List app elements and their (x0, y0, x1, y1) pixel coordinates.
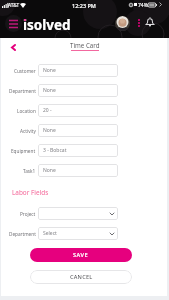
staticText: Labor Fields (12, 188, 49, 197)
staticText: CANCEL (70, 273, 93, 281)
button[interactable]: Back (7, 41, 20, 54)
staticText: AT&T (8, 2, 20, 9)
staticText: Task1 (23, 168, 36, 174)
button[interactable]: None (38, 64, 118, 77)
button[interactable]: 20 - (38, 104, 118, 117)
staticText: 12:23 PM (72, 2, 96, 9)
button[interactable]: Notifications (143, 15, 156, 28)
staticText: Activity (20, 128, 36, 134)
staticText: Location (17, 108, 36, 114)
staticText: Department (9, 231, 36, 237)
button[interactable]: More options (135, 16, 142, 30)
staticText: Time Card (70, 41, 100, 49)
staticText: Select (43, 230, 57, 237)
button[interactable]: Select (38, 227, 118, 240)
staticText: Department (9, 88, 36, 94)
button[interactable]: Menu (5, 15, 22, 32)
staticText: 74% (138, 2, 148, 9)
staticText: Customer (14, 68, 36, 74)
staticText: None (43, 87, 56, 94)
button[interactable]: Profile (115, 16, 130, 31)
staticText: None (43, 127, 56, 134)
staticText: SAVE (73, 251, 89, 259)
staticText: 20 - (43, 107, 52, 114)
button[interactable]: None (38, 84, 118, 97)
button[interactable] (38, 207, 118, 220)
staticText: None (43, 167, 56, 174)
staticText: Equipment (11, 148, 36, 154)
button[interactable]: None (38, 124, 118, 137)
button[interactable]: SAVE (30, 248, 132, 262)
button[interactable]: CANCEL (30, 270, 132, 284)
staticText: 3 - Bobcat (43, 147, 67, 154)
staticText: isolved (23, 16, 71, 34)
button[interactable]: 3 - Bobcat (38, 144, 118, 157)
staticText: Project (20, 211, 36, 217)
staticText: None (43, 67, 56, 74)
button[interactable]: None (38, 164, 118, 177)
